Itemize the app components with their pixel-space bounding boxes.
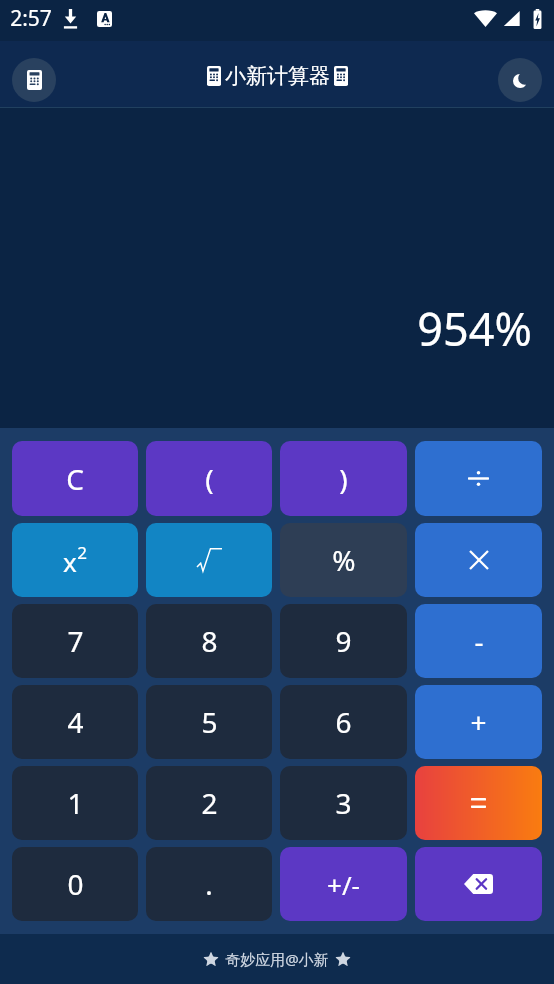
staticText: ( [205, 460, 214, 498]
button[interactable]: 5 [146, 685, 272, 759]
staticText: 0 [67, 865, 84, 903]
staticText: x [63, 544, 77, 579]
button[interactable]: ( [146, 441, 272, 516]
staticText: 奇妙应用@小新 [225, 949, 329, 969]
staticText: 2 [77, 541, 87, 564]
staticText: % [332, 541, 356, 579]
button[interactable]: . [146, 847, 272, 921]
button[interactable]: +/- [280, 847, 407, 921]
button[interactable]: ) [280, 441, 407, 516]
button[interactable]: 4 [12, 685, 138, 759]
button[interactable] [415, 441, 542, 516]
staticText: 8 [201, 622, 218, 660]
button[interactable]: 0 [12, 847, 138, 921]
button[interactable]: Calculator [12, 58, 56, 102]
button[interactable]: 1 [12, 766, 138, 840]
staticText: 3 [335, 784, 352, 822]
staticText: 954% [417, 298, 532, 359]
staticText: ) [339, 460, 348, 498]
staticText: 7 [67, 622, 84, 660]
staticText: 6 [335, 703, 352, 741]
button[interactable]: Backspace [415, 847, 542, 921]
staticText: 2:57 [10, 4, 52, 33]
button[interactable]: 6 [280, 685, 407, 759]
staticText: +/- [327, 867, 360, 902]
button[interactable] [146, 523, 272, 597]
button[interactable]: C [12, 441, 138, 516]
button[interactable]: + [415, 685, 542, 759]
staticText: 小新计算器 [225, 63, 330, 89]
button[interactable]: 9 [280, 604, 407, 678]
staticText: C [66, 460, 84, 498]
staticText: - [474, 622, 484, 660]
button[interactable] [415, 766, 542, 840]
button[interactable] [415, 523, 542, 597]
staticText: 1 [67, 784, 84, 822]
staticText: 9 [335, 622, 352, 660]
button[interactable]: Dark mode [498, 58, 542, 102]
button[interactable]: % [280, 523, 407, 597]
button[interactable]: 8 [146, 604, 272, 678]
staticText: 4 [67, 703, 84, 741]
staticText: 5 [201, 703, 218, 741]
button[interactable]: x [12, 523, 138, 597]
staticText: 2 [201, 784, 218, 822]
button[interactable]: 2 [146, 766, 272, 840]
staticText: + [470, 703, 487, 741]
button[interactable]: - [415, 604, 542, 678]
button[interactable]: 7 [12, 604, 138, 678]
button[interactable]: 3 [280, 766, 407, 840]
staticText: . [205, 865, 213, 903]
